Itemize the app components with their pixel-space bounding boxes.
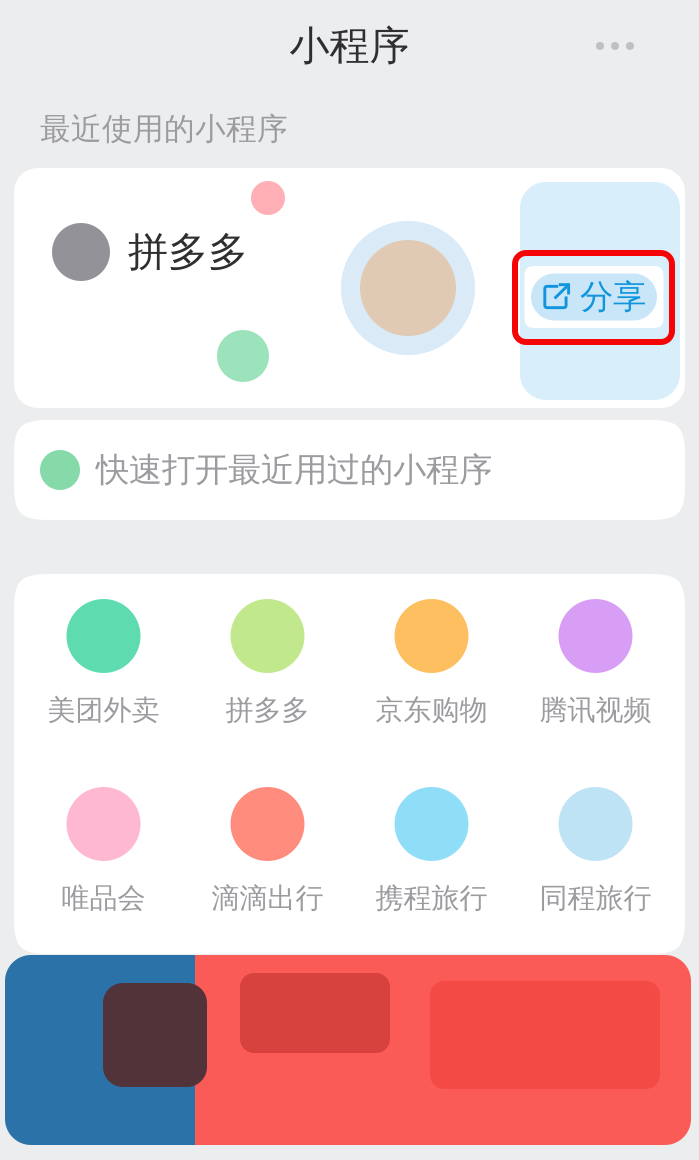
staticText: 拼多多	[128, 227, 248, 276]
staticText: 京东购物	[375, 693, 487, 727]
button[interactable]: 携程旅行	[349, 764, 513, 952]
button[interactable]: 京东购物	[349, 576, 513, 764]
staticText: 小程序	[289, 21, 409, 70]
staticText: 拼多多	[225, 693, 309, 727]
staticText: 同程旅行	[539, 881, 651, 915]
staticText: 滴滴出行	[211, 881, 323, 915]
button[interactable]: 同程旅行	[513, 764, 677, 952]
staticText: 美团外卖	[47, 693, 159, 727]
staticText: 快速打开最近用过的小程序	[96, 449, 492, 490]
staticText: 携程旅行	[375, 881, 487, 915]
button[interactable]: 快速打开最近用过的小程序	[14, 420, 685, 520]
button[interactable]: 美团外卖	[21, 576, 185, 764]
button[interactable]: 腾讯视频	[513, 576, 677, 764]
button[interactable]: 唯品会	[21, 764, 185, 952]
staticText: 分享	[580, 276, 646, 317]
button[interactable]: 分享	[524, 266, 663, 328]
button[interactable]: More	[570, 20, 660, 72]
staticText: 最近使用的小程序	[40, 110, 288, 148]
staticText: 腾讯视频	[539, 693, 651, 727]
button[interactable]: 滴滴出行	[185, 764, 349, 952]
button[interactable]: 拼多多	[185, 576, 349, 764]
staticText: 唯品会	[61, 881, 145, 915]
